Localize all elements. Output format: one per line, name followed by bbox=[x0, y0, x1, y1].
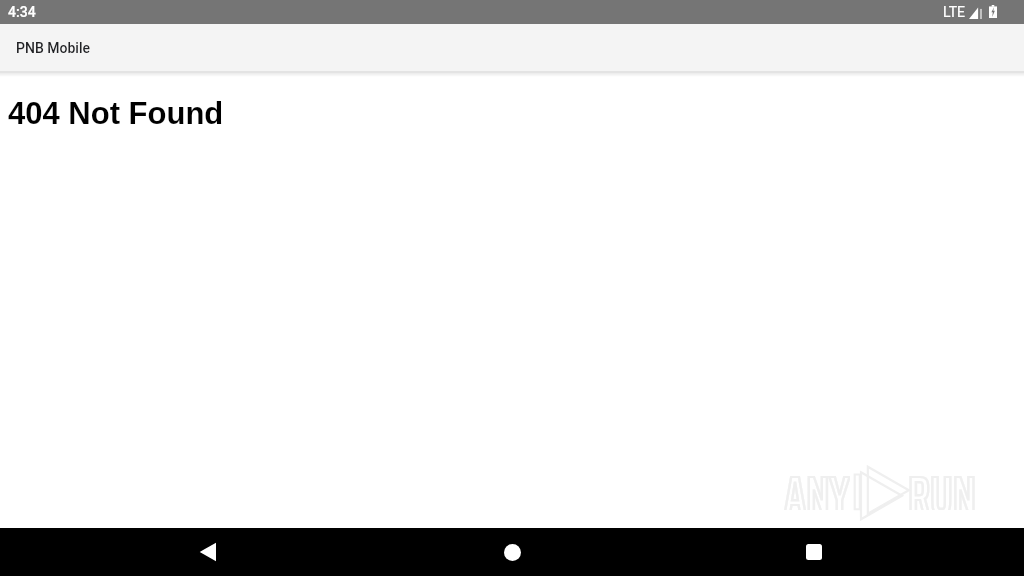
button[interactable]: Home bbox=[488, 528, 536, 576]
staticText: PNB Mobile bbox=[16, 40, 91, 56]
staticText: LTE bbox=[943, 4, 965, 20]
staticText: 404 Not Found bbox=[8, 96, 224, 131]
button[interactable]: Recent apps bbox=[790, 528, 838, 576]
staticText: RUN bbox=[908, 454, 976, 510]
staticText: 4:34 bbox=[8, 4, 36, 20]
button[interactable]: Back bbox=[184, 528, 232, 576]
staticText: ANY bbox=[784, 454, 850, 510]
